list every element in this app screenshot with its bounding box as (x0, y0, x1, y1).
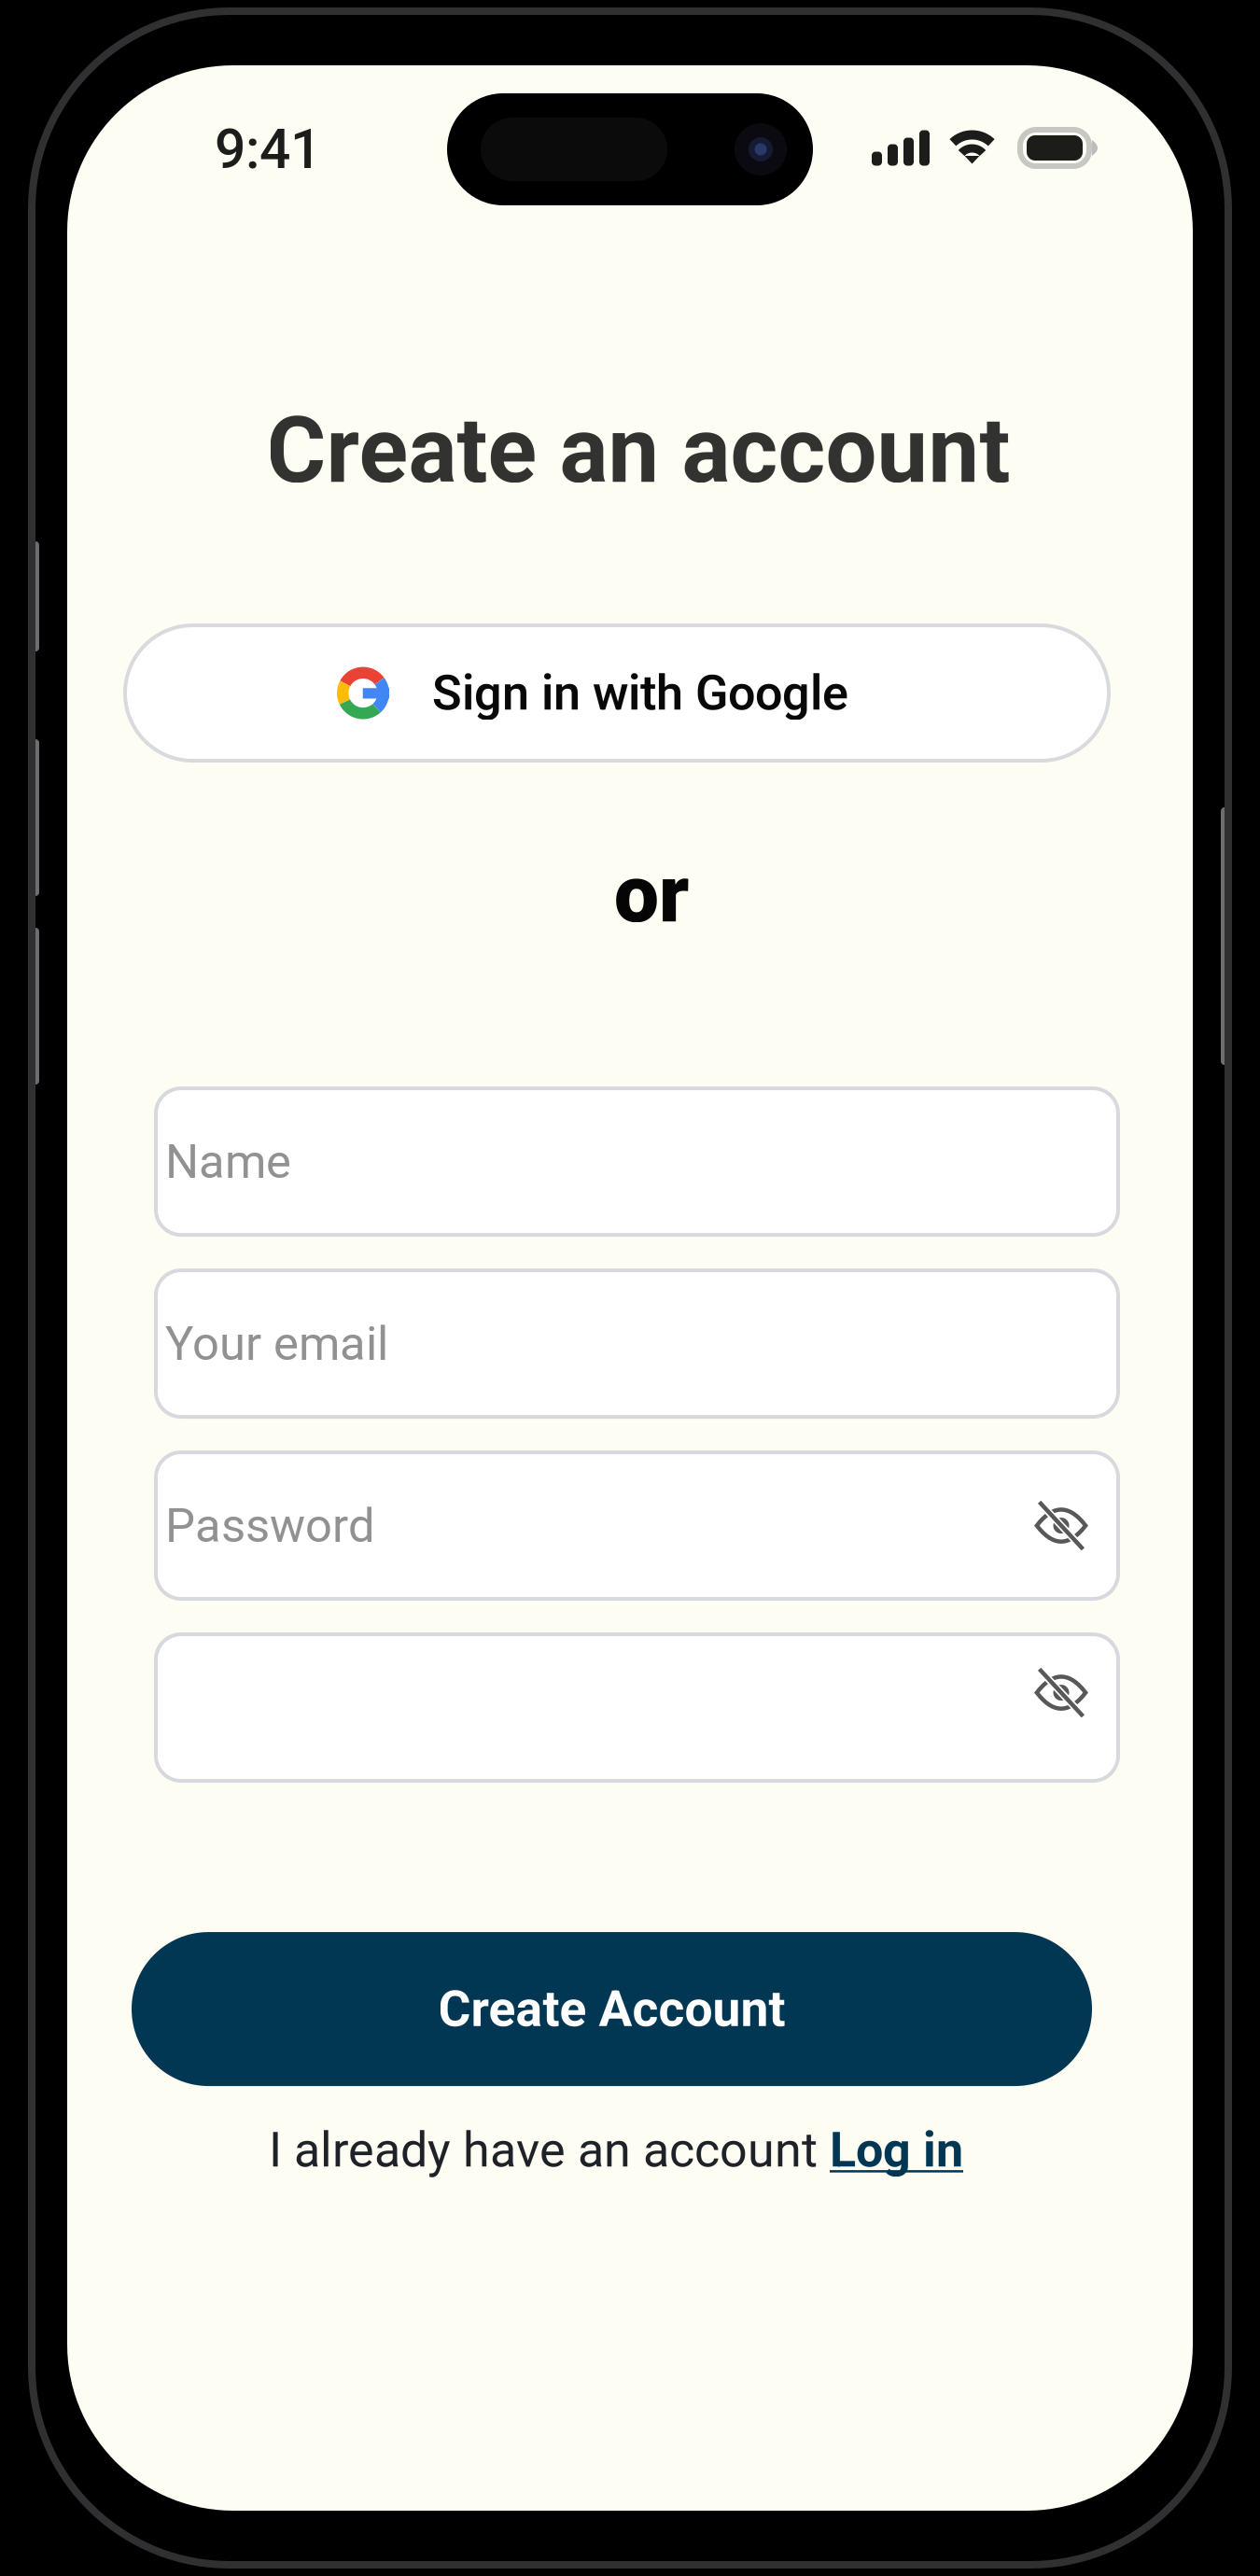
button[interactable]: Log in (830, 2122, 963, 2178)
button[interactable]: Create Account (132, 1932, 1092, 2086)
staticText: 9:41 (215, 117, 321, 181)
staticText: Create Account (438, 1980, 785, 2038)
button[interactable]: Show password (1009, 1473, 1113, 1578)
staticText: Log in (830, 2122, 963, 2178)
staticText: or (614, 848, 689, 941)
staticText: Create an account (266, 398, 1010, 504)
staticText: Your email (165, 1316, 388, 1371)
staticText: Sign in with Google (432, 665, 848, 721)
button[interactable]: Show password (1009, 1655, 1113, 1760)
button[interactable]: Sign in with Google (125, 625, 1109, 761)
staticText: Password (165, 1498, 375, 1553)
staticText: I already have an account (269, 2122, 830, 2178)
staticText: Name (165, 1134, 291, 1189)
